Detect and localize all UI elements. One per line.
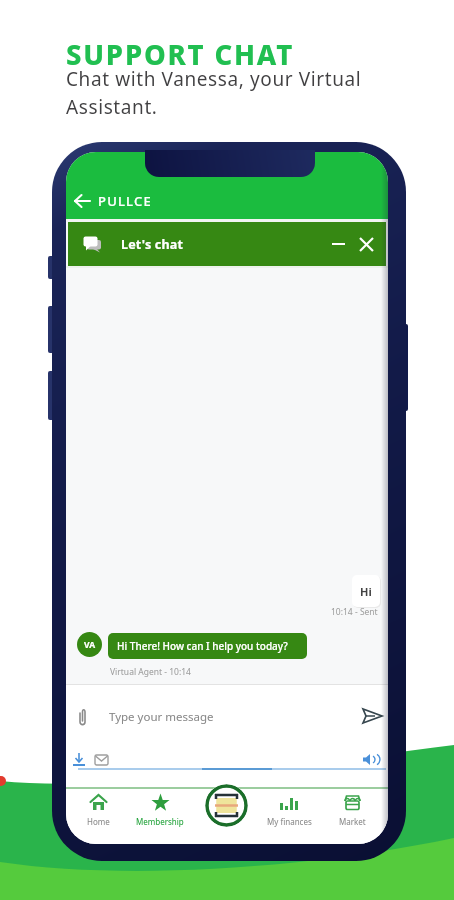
staticText: Market — [339, 816, 366, 827]
staticText: Type your message — [109, 709, 214, 725]
staticText: VA — [84, 639, 96, 651]
staticText: My finances — [267, 816, 312, 827]
staticText: Chat with Vanessa, your Virtual — [66, 66, 362, 92]
staticText: Hi There! How can I help you today? — [117, 639, 288, 653]
button[interactable] — [326, 232, 350, 256]
staticText: Assistant. — [66, 94, 158, 120]
button[interactable] — [359, 702, 387, 730]
button[interactable]: Market — [328, 792, 376, 842]
button[interactable]: Membership — [136, 792, 184, 842]
button[interactable]: Type your message — [109, 684, 214, 750]
staticText: Home — [87, 816, 110, 827]
staticText: 10:14 - Sent — [331, 606, 378, 618]
staticText: Membership — [136, 816, 184, 827]
staticText: Virtual Agent - 10:14 — [110, 666, 191, 678]
staticText: Let's chat — [121, 236, 184, 253]
button[interactable]: Home — [74, 792, 122, 842]
button[interactable] — [205, 784, 248, 827]
button[interactable]: PULLCE — [66, 182, 388, 219]
button[interactable] — [354, 232, 378, 256]
staticText: PULLCE — [98, 192, 152, 210]
staticText: SUPPORT CHAT — [66, 36, 295, 73]
staticText: Hi — [360, 584, 372, 599]
button[interactable]: My finances — [265, 792, 313, 842]
